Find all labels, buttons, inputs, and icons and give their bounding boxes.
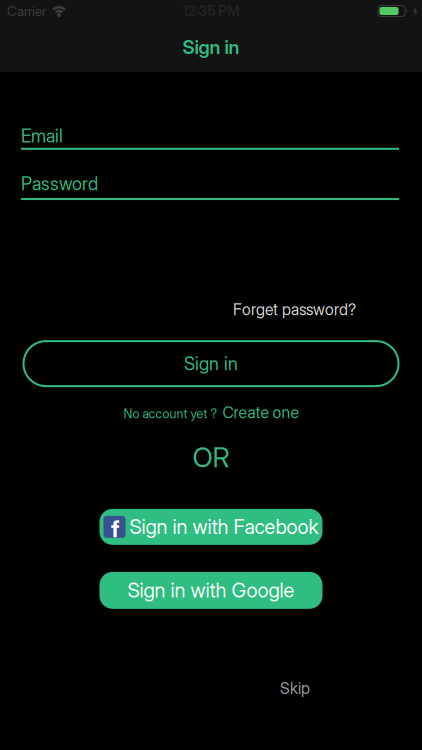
staticText: Sign in: [184, 353, 238, 374]
staticText: Sign in with Facebook: [129, 515, 318, 539]
staticText: f: [111, 515, 120, 543]
button[interactable]: Email: [0, 125, 422, 150]
staticText: Sign in with Google: [127, 578, 294, 602]
button[interactable]: Sign in with Google: [99, 572, 322, 609]
button[interactable]: No account yet ?: [123, 403, 298, 422]
button[interactable]: Password: [0, 173, 422, 200]
button[interactable]: Skip: [280, 679, 310, 698]
button[interactable]: f: [99, 509, 322, 545]
staticText: No account yet ?: [123, 406, 217, 421]
staticText: Email: [21, 125, 63, 147]
staticText: Forget password?: [233, 300, 356, 319]
staticText: Skip: [280, 679, 310, 698]
staticText: 12:35 PM: [182, 2, 239, 19]
staticText: Carrier: [7, 3, 46, 19]
staticText: OR: [192, 441, 229, 474]
staticText: Create one: [222, 403, 298, 422]
button[interactable]: Forget password?: [233, 300, 356, 319]
staticText: Sign in: [182, 35, 239, 58]
button[interactable]: Sign in: [23, 341, 398, 386]
staticText: Password: [21, 173, 98, 195]
